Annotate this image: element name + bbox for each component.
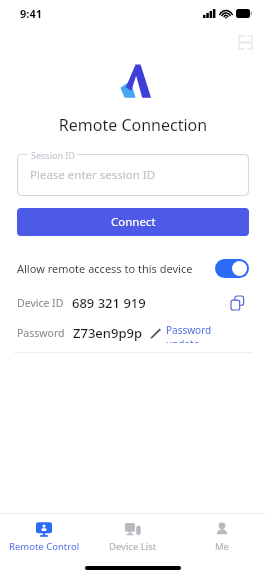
button[interactable]: Copy device ID [227, 292, 249, 314]
button[interactable]: Allow remote access to this device [17, 254, 249, 282]
staticText: Me [215, 540, 229, 553]
staticText: Password update [166, 323, 247, 343]
staticText: Password [17, 326, 65, 340]
button[interactable]: Connect [17, 208, 249, 236]
staticText: Please enter session ID [30, 167, 156, 183]
button[interactable]: Remote Control [0, 514, 88, 560]
staticText: Remote Connection [0, 114, 266, 136]
button[interactable]: Password update [164, 320, 249, 346]
staticText: Remote Control [9, 540, 80, 553]
staticText: Session ID [31, 149, 75, 161]
button[interactable]: Me [177, 514, 266, 560]
staticText: Z73en9p9p [73, 324, 142, 342]
button[interactable]: Session ID [17, 154, 249, 196]
button[interactable]: Edit password [146, 324, 164, 342]
staticText: 689 321 919 [72, 294, 146, 312]
button[interactable]: Device List [88, 514, 177, 560]
button[interactable]: Scan QR code [232, 29, 258, 55]
staticText: Connect [111, 214, 156, 230]
staticText: Allow remote access to this device [17, 261, 193, 276]
staticText: 9:41 [20, 6, 42, 21]
staticText: Device ID [17, 296, 64, 310]
staticText: Device List [109, 540, 157, 553]
